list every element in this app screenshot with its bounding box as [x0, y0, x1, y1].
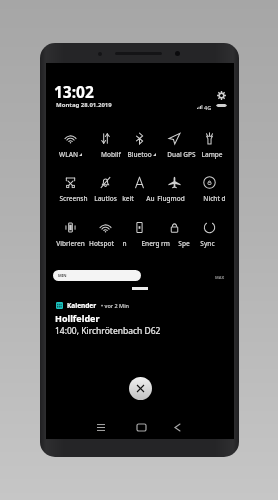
staticText: Sync: [200, 239, 215, 248]
staticText: n: [122, 239, 127, 248]
button[interactable]: [157, 167, 192, 203]
button[interactable]: [192, 212, 227, 248]
staticText: rm: [161, 239, 170, 248]
staticText: Kalender: [67, 301, 97, 310]
staticText: Screensh: [59, 194, 88, 203]
staticText: MAX: [215, 275, 225, 280]
staticText: • vor 2 Min: [101, 302, 130, 309]
staticText: Hotspot: [89, 239, 114, 248]
button[interactable]: [157, 123, 192, 159]
button[interactable]: [53, 123, 88, 159]
button[interactable]: [157, 212, 192, 248]
staticText: 4G: [204, 104, 212, 111]
staticText: Spe: [178, 239, 190, 248]
button[interactable]: [122, 167, 157, 203]
button[interactable]: Home: [131, 417, 151, 437]
staticText: WLAN: [59, 150, 78, 159]
staticText: 13:02: [54, 81, 94, 102]
staticText: 14:00, Kirchrötenbach D62: [55, 325, 161, 337]
button[interactable]: [192, 167, 227, 203]
staticText: Energ: [141, 239, 160, 248]
staticText: Lampe: [201, 150, 223, 159]
button[interactable]: Settings: [213, 87, 229, 103]
staticText: Bluetoo: [127, 150, 152, 159]
staticText: Flugmod: [157, 194, 185, 203]
button[interactable]: MIN: [53, 270, 141, 281]
staticText: Dual GPS: [167, 150, 196, 159]
button[interactable]: [88, 167, 123, 203]
button[interactable]: [53, 167, 88, 203]
button[interactable]: [88, 123, 123, 159]
button[interactable]: Back: [167, 417, 187, 437]
staticText: Vibrieren: [56, 239, 85, 248]
button[interactable]: [122, 123, 157, 159]
staticText: Montag 28.01.2019: [56, 101, 112, 109]
staticText: Hollfelder: [55, 312, 100, 324]
button[interactable]: [53, 212, 88, 248]
staticText: Nicht d: [203, 194, 226, 203]
button[interactable]: [192, 123, 227, 159]
staticText: Lautlos: [94, 194, 117, 203]
staticText: keit: [122, 194, 134, 203]
staticText: Au: [146, 194, 155, 203]
staticText: Mobilf: [101, 150, 121, 159]
button[interactable]: [122, 212, 157, 248]
button[interactable]: Recent apps: [91, 417, 111, 437]
button[interactable]: Close: [129, 377, 152, 400]
button[interactable]: [88, 212, 123, 248]
button[interactable]: Kalender: [56, 299, 234, 311]
staticText: MIN: [58, 273, 67, 278]
